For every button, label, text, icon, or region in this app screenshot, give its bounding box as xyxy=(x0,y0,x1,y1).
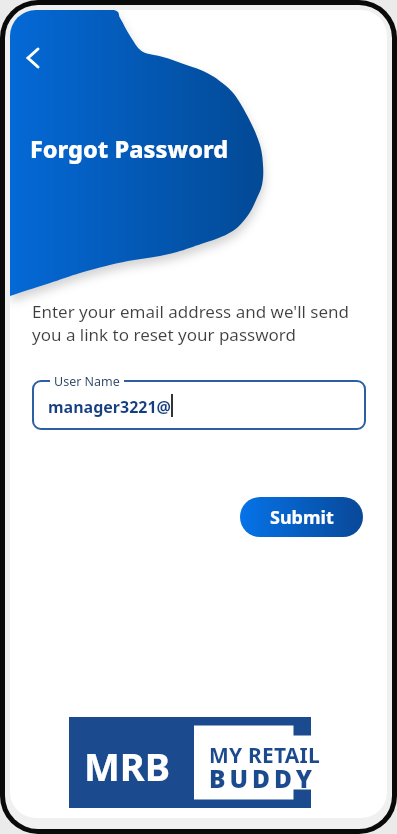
staticText: BUDDY xyxy=(209,762,317,795)
staticText: MRB xyxy=(84,740,171,792)
staticText: Forgot Password xyxy=(30,133,229,165)
staticText: Submit xyxy=(270,505,334,530)
staticText: MY RETAIL xyxy=(209,741,320,770)
button[interactable]: Submit xyxy=(240,497,363,537)
staticText: User Name xyxy=(54,373,120,390)
button[interactable]: manager3221@ xyxy=(32,380,366,430)
button[interactable] xyxy=(14,44,46,76)
staticText: manager3221@ xyxy=(48,396,171,418)
staticText: Enter your email address and we'll send … xyxy=(32,300,350,346)
